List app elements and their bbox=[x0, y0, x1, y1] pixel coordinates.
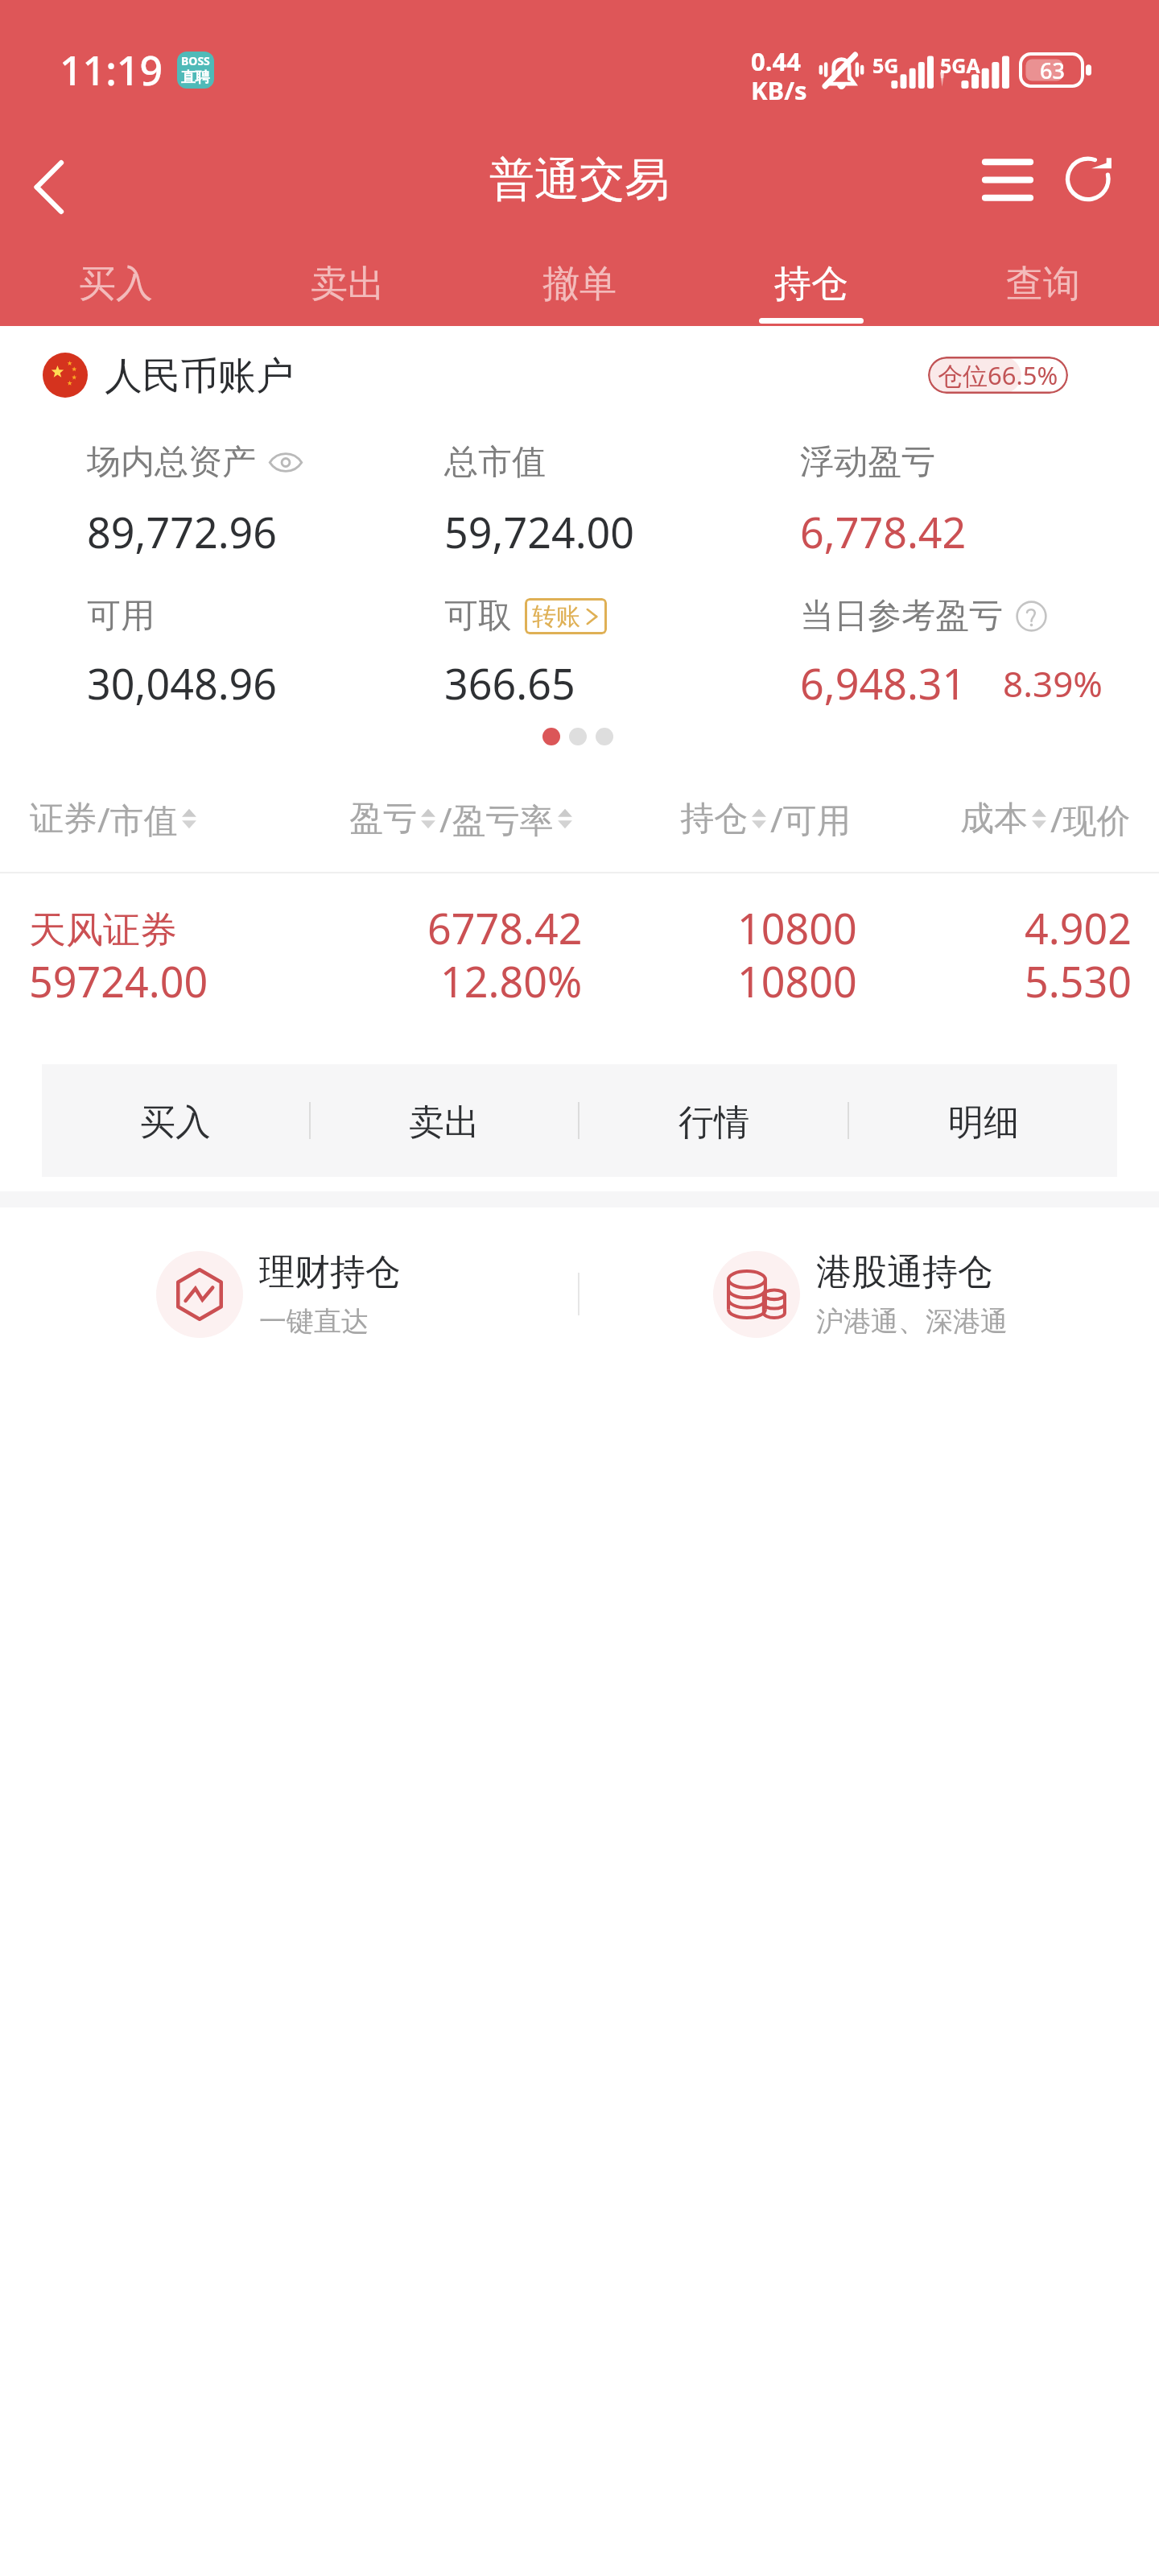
staticText: 持仓 bbox=[680, 798, 748, 840]
staticText: 天风证券 bbox=[29, 907, 177, 954]
button[interactable]: 人民币账户 bbox=[43, 353, 294, 398]
button[interactable]: 明细 bbox=[849, 1064, 1117, 1177]
button[interactable]: Menu bbox=[969, 141, 1046, 218]
staticText: 63 bbox=[1040, 56, 1065, 85]
staticText: /现价 bbox=[1050, 796, 1131, 842]
staticText: 6778.42 bbox=[427, 899, 583, 956]
button[interactable]: 买入 bbox=[42, 1064, 309, 1177]
button[interactable]: 证券 bbox=[25, 792, 205, 845]
staticText: 59724.00 bbox=[29, 952, 208, 1009]
staticText: 5.530 bbox=[1025, 952, 1132, 1009]
staticText: 持仓 bbox=[774, 261, 848, 308]
staticText: 转账 bbox=[532, 601, 580, 632]
button[interactable]: Toggle balance visibility bbox=[269, 451, 303, 474]
staticText: 浮动盈亏 bbox=[800, 441, 935, 484]
button[interactable]: 持仓 bbox=[695, 221, 927, 326]
staticText: 成本 bbox=[960, 798, 1028, 840]
button[interactable]: 买入 bbox=[0, 221, 232, 326]
button[interactable]: 理财持仓 bbox=[156, 1250, 401, 1339]
staticText: 撤单 bbox=[542, 261, 617, 308]
staticText: 买入 bbox=[79, 261, 153, 308]
staticText: 0.44 bbox=[751, 44, 801, 78]
staticText: /市值 bbox=[97, 796, 178, 842]
staticText: 沪港通、深港通 bbox=[816, 1304, 1008, 1339]
staticText: 卖出 bbox=[311, 261, 385, 308]
button[interactable]: 盈亏 bbox=[344, 792, 581, 845]
staticText: 11:19 bbox=[60, 43, 163, 97]
staticText: 场内总资产 bbox=[87, 441, 256, 484]
staticText: 普通交易 bbox=[489, 151, 670, 208]
staticText: 可用 bbox=[87, 595, 155, 638]
button[interactable]: 仓位66.5% bbox=[928, 357, 1068, 394]
staticText: /盈亏率 bbox=[439, 796, 554, 842]
staticText: 30,048.96 bbox=[87, 654, 278, 712]
staticText: 证券 bbox=[30, 798, 97, 840]
staticText: 59,724.00 bbox=[444, 503, 635, 560]
staticText: 行情 bbox=[678, 1100, 749, 1145]
staticText: 8.39% bbox=[1003, 659, 1103, 708]
staticText: 明细 bbox=[948, 1100, 1019, 1145]
staticText: 6,948.31 bbox=[800, 654, 967, 712]
staticText: 12.80% bbox=[440, 952, 583, 1009]
staticText: 买入 bbox=[140, 1100, 211, 1145]
button[interactable]: Refresh bbox=[1050, 141, 1128, 218]
button[interactable]: 港股通持仓 bbox=[713, 1250, 1008, 1339]
staticText: 89,772.96 bbox=[87, 503, 278, 560]
staticText: 当日参考盈亏 bbox=[800, 595, 1003, 638]
staticText: 查询 bbox=[1006, 261, 1080, 308]
staticText: BOSS bbox=[181, 53, 210, 68]
button[interactable]: 天风证券 bbox=[0, 873, 1159, 1006]
staticText: 人民币账户 bbox=[105, 353, 294, 398]
staticText: 盈亏 bbox=[349, 798, 417, 840]
staticText: 6,778.42 bbox=[800, 503, 967, 560]
staticText: 5GA bbox=[940, 52, 980, 79]
button[interactable]: Help bbox=[1016, 601, 1047, 632]
staticText: 一键直达 bbox=[259, 1304, 369, 1339]
staticText: 港股通持仓 bbox=[816, 1250, 993, 1294]
staticText: 5G bbox=[872, 52, 899, 79]
staticText: 10800 bbox=[737, 952, 857, 1009]
button[interactable]: 行情 bbox=[579, 1064, 848, 1177]
staticText: 卖出 bbox=[409, 1100, 480, 1145]
button[interactable]: 卖出 bbox=[232, 221, 464, 326]
button[interactable]: 成本 bbox=[955, 792, 1136, 845]
button[interactable]: 转账 bbox=[525, 598, 607, 634]
staticText: KB/s bbox=[751, 73, 807, 107]
staticText: 可取 bbox=[444, 595, 512, 638]
staticText: /可用 bbox=[770, 796, 851, 842]
staticText: 仓位66.5% bbox=[938, 358, 1058, 392]
button[interactable]: 撤单 bbox=[464, 221, 695, 326]
staticText: 理财持仓 bbox=[259, 1250, 401, 1294]
staticText: 366.65 bbox=[444, 654, 575, 712]
button[interactable]: 卖出 bbox=[311, 1064, 578, 1177]
button[interactable]: 查询 bbox=[927, 221, 1159, 326]
button[interactable]: Back bbox=[11, 150, 85, 224]
button[interactable]: 持仓 bbox=[675, 792, 856, 845]
staticText: 总市值 bbox=[444, 441, 546, 484]
staticText: 4.902 bbox=[1025, 899, 1132, 956]
staticText: 直聘 bbox=[181, 68, 210, 87]
staticText: 10800 bbox=[737, 899, 857, 956]
